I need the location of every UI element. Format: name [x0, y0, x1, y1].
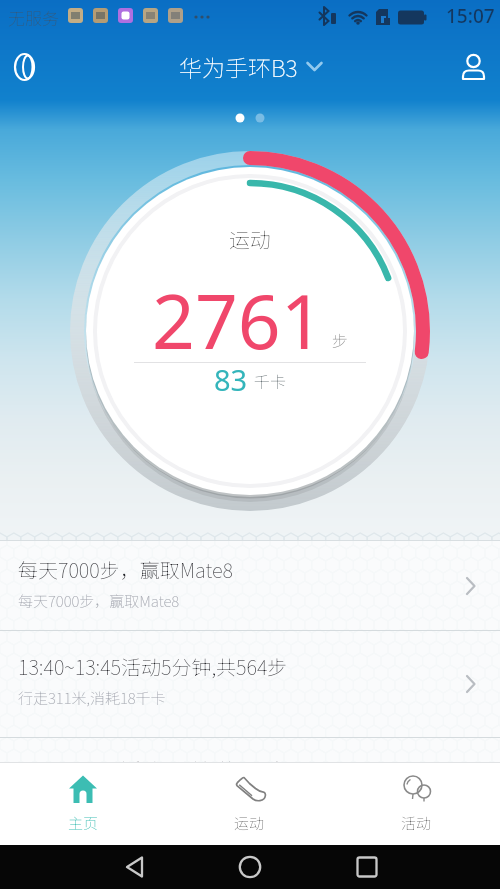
button[interactable]: 每天7000步，赢取Mate8 [0, 541, 500, 630]
staticText: 活动 [401, 812, 432, 834]
button[interactable] [226, 855, 274, 879]
button[interactable]: 运动 [166, 762, 333, 845]
staticText: 每天7000步，赢取Mate8 [18, 555, 233, 584]
staticText: 运动 [229, 224, 271, 254]
button[interactable] [111, 855, 159, 879]
button[interactable] [343, 855, 391, 879]
staticText: 步 [332, 328, 349, 351]
staticText: 主页 [68, 812, 99, 834]
staticText: 运动 [234, 812, 265, 834]
button[interactable]: 华为手环B3 [179, 50, 322, 83]
button[interactable]: 活动 [333, 762, 500, 845]
staticText: 2761 [152, 269, 324, 365]
staticText: 千卡 [254, 369, 287, 392]
staticText: 无服务 [8, 5, 59, 30]
button[interactable] [12, 53, 40, 81]
staticText: 13:40~13:45活动5分钟,共564步 [18, 652, 288, 681]
button[interactable]: 主页 [0, 762, 166, 845]
staticText: 83 [214, 360, 248, 396]
staticText: 行走311米,消耗18千卡 [18, 687, 166, 709]
staticText: 15:07 [446, 3, 495, 29]
button[interactable]: 13:40~13:45活动5分钟,共564步 [0, 631, 500, 737]
staticText: 13:20~13:25活动5分钟,共158步 [18, 755, 288, 784]
staticText: 每天7000步，赢取Mate8 [18, 590, 180, 612]
button[interactable] [461, 54, 487, 80]
staticText: 华为手环B3 [179, 50, 298, 83]
